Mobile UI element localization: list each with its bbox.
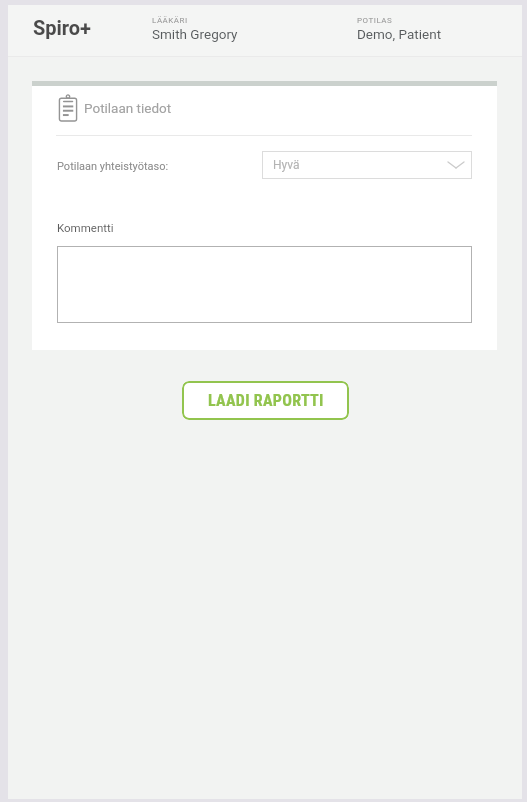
staticText: Kommentti <box>57 221 114 234</box>
other: Patient information <box>57 94 79 121</box>
staticText: Spiro+ <box>33 16 92 39</box>
staticText: LÄÄKÄRI <box>152 16 188 25</box>
staticText: Potilaan tiedot <box>84 100 172 116</box>
staticText: Hyvä <box>273 158 300 172</box>
staticText: Potilaan yhteistyötaso: <box>57 160 169 173</box>
staticText: POTILAS <box>357 16 393 25</box>
staticText: Smith Gregory <box>152 26 238 42</box>
button[interactable]: Hyvä <box>262 151 472 179</box>
staticText: Demo, Patient <box>357 26 442 42</box>
button[interactable] <box>57 246 472 323</box>
button[interactable]: LAADI RAPORTTI <box>182 381 349 420</box>
staticText: LAADI RAPORTTI <box>208 391 324 410</box>
